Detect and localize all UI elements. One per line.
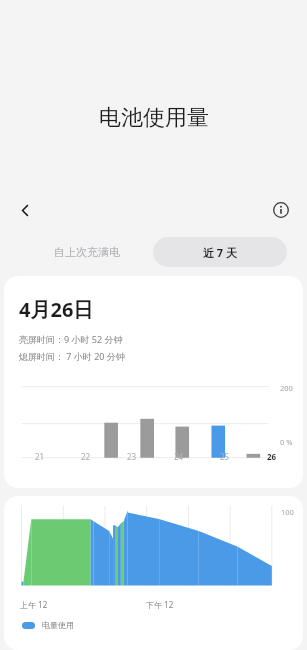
- staticText: 200: [280, 383, 293, 393]
- button[interactable]: Back: [11, 196, 39, 224]
- staticText: 25: [220, 451, 230, 462]
- staticText: 近 7 天: [203, 245, 238, 260]
- button[interactable]: 近 7 天: [153, 237, 287, 267]
- staticText: 0 %: [280, 437, 293, 447]
- button[interactable]: 4月26日: [4, 276, 303, 488]
- staticText: 4月26日: [19, 296, 94, 323]
- button[interactable]: 自上次充满电: [20, 237, 153, 267]
- staticText: 21: [35, 451, 45, 462]
- staticText: 24: [174, 451, 184, 462]
- button[interactable]: 电量使用: [22, 620, 74, 630]
- staticText: 26: [267, 451, 277, 462]
- staticText: 熄屏时间： 7 小时 20 分钟: [19, 350, 125, 362]
- staticText: 自上次充满电: [54, 245, 120, 259]
- staticText: 电量使用: [42, 620, 74, 630]
- staticText: 上午 12: [20, 599, 48, 610]
- staticText: 下午 12: [146, 599, 174, 610]
- staticText: 100: [281, 507, 294, 517]
- staticText: 亮屏时间：9 小时 52 分钟: [19, 333, 123, 345]
- button[interactable]: Information: [267, 196, 295, 224]
- staticText: 23: [127, 451, 137, 462]
- staticText: 电池使用量: [99, 104, 209, 132]
- staticText: 22: [81, 451, 91, 462]
- button[interactable]: 100: [4, 496, 303, 650]
